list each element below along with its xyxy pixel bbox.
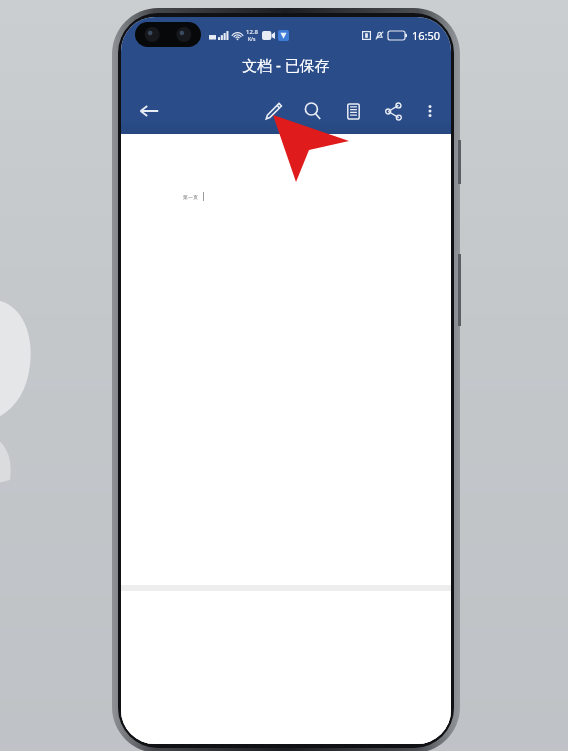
staticText: 12.8 <box>246 28 258 36</box>
staticText: 文档 - 已保存 <box>242 55 330 75</box>
button[interactable]: 第一页 <box>121 134 451 585</box>
staticText: K/s <box>248 36 256 43</box>
button[interactable]: Share <box>373 91 413 131</box>
button[interactable] <box>121 591 451 744</box>
staticText: 16:50 <box>412 28 441 43</box>
button[interactable]: Outline <box>333 91 373 131</box>
button[interactable]: Back <box>129 91 169 131</box>
staticText: 第一页 <box>183 194 198 200</box>
button[interactable]: More options <box>413 94 447 128</box>
button[interactable]: Edit <box>253 91 293 131</box>
button[interactable]: Search <box>293 91 333 131</box>
